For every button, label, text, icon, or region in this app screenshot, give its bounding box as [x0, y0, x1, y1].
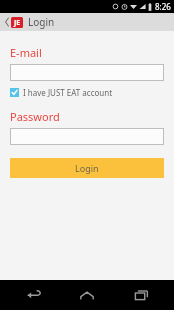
staticText: 8:26	[155, 1, 171, 12]
button[interactable]	[10, 128, 164, 145]
button[interactable]: Recent apps	[121, 280, 161, 310]
staticText: JE	[14, 18, 21, 28]
button[interactable]: I have JUST EAT account	[10, 86, 113, 99]
button[interactable]: Back	[2, 13, 11, 31]
staticText: I have JUST EAT account	[23, 87, 113, 98]
button[interactable]: Login	[10, 158, 164, 178]
staticText: Login	[28, 15, 55, 29]
button[interactable]: Home	[67, 280, 107, 310]
staticText: Password	[10, 109, 60, 124]
staticText: Login	[75, 162, 99, 174]
button[interactable]: Back	[14, 280, 54, 310]
staticText: E-mail	[10, 45, 42, 60]
button[interactable]	[10, 64, 164, 81]
